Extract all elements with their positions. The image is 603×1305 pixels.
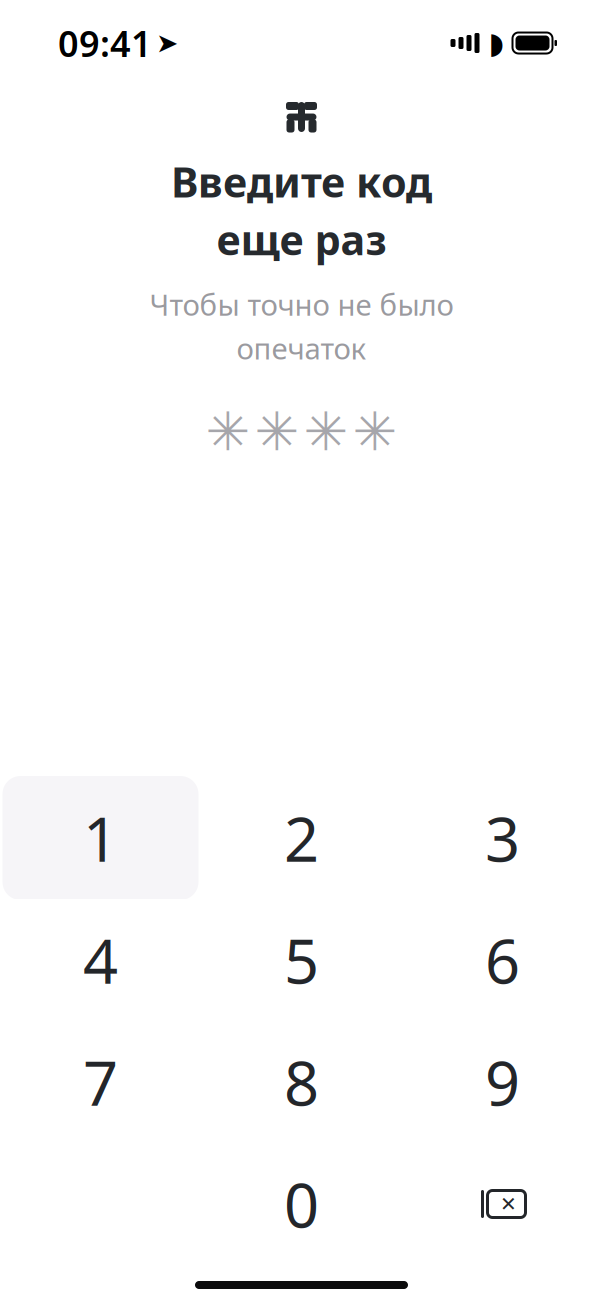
staticText: ✳ (352, 401, 397, 462)
staticText: 1 (83, 797, 118, 879)
staticText: ➤ (156, 28, 178, 58)
staticText: 09:41 (58, 19, 152, 67)
button[interactable]: 8 (201, 1021, 402, 1143)
staticText: 8 (284, 1041, 319, 1123)
staticText: ✳ (303, 401, 348, 462)
button[interactable]: 4 (0, 899, 201, 1021)
staticText: 3 (485, 797, 520, 879)
button[interactable]: 6 (402, 899, 603, 1021)
staticText: ◗ (488, 26, 503, 60)
staticText: Чтобы точно не было (149, 285, 453, 324)
staticText: 9 (485, 1041, 520, 1123)
button[interactable]: 3 (402, 777, 603, 899)
staticText: ✳ (205, 401, 250, 462)
staticText: 5 (284, 919, 319, 1001)
staticText: 4 (83, 919, 118, 1001)
button[interactable]: 2 (201, 777, 402, 899)
button[interactable]: 7 (0, 1021, 201, 1143)
staticText: еще раз (216, 212, 386, 267)
button[interactable]: 0 (201, 1143, 402, 1265)
staticText: 7 (83, 1041, 118, 1123)
button[interactable]: Удалить (402, 1143, 603, 1265)
staticText: 0 (284, 1163, 319, 1245)
button[interactable]: 5 (201, 899, 402, 1021)
staticText: 2 (284, 797, 319, 879)
staticText: Введите код (171, 154, 432, 209)
staticText: ✕ (500, 1193, 517, 1215)
button[interactable]: 9 (402, 1021, 603, 1143)
staticText: опечаток (236, 329, 366, 368)
staticText: ✳ (254, 401, 299, 462)
button[interactable]: 1 (0, 777, 201, 899)
staticText: 6 (485, 919, 520, 1001)
